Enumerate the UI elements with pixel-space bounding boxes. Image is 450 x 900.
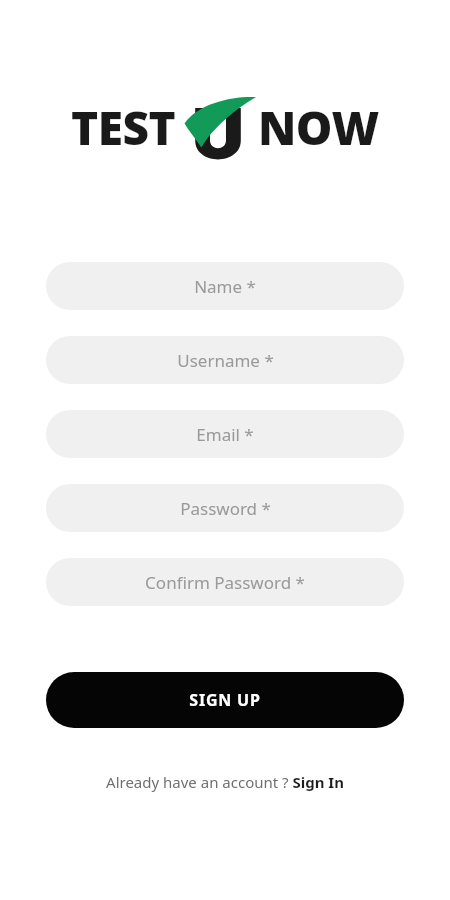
- button[interactable]: Confirm Password *: [46, 558, 404, 606]
- staticText: Email *: [196, 423, 254, 446]
- staticText: Confirm Password *: [145, 571, 305, 594]
- button[interactable]: Username *: [46, 336, 404, 384]
- staticText: Username *: [177, 349, 274, 372]
- staticText: Already have an account ? Sign In: [106, 772, 344, 792]
- button[interactable]: Name *: [46, 262, 404, 310]
- staticText: Password *: [180, 497, 271, 520]
- button[interactable]: Password *: [46, 484, 404, 532]
- button[interactable]: Already have an account ? Sign In: [98, 768, 352, 796]
- button[interactable]: Email *: [46, 410, 404, 458]
- button[interactable]: SIGN UP: [46, 672, 404, 728]
- staticText: SIGN UP: [189, 689, 261, 711]
- staticText: NOW: [258, 96, 379, 156]
- staticText: Name *: [194, 275, 256, 298]
- staticText: TEST: [71, 96, 176, 156]
